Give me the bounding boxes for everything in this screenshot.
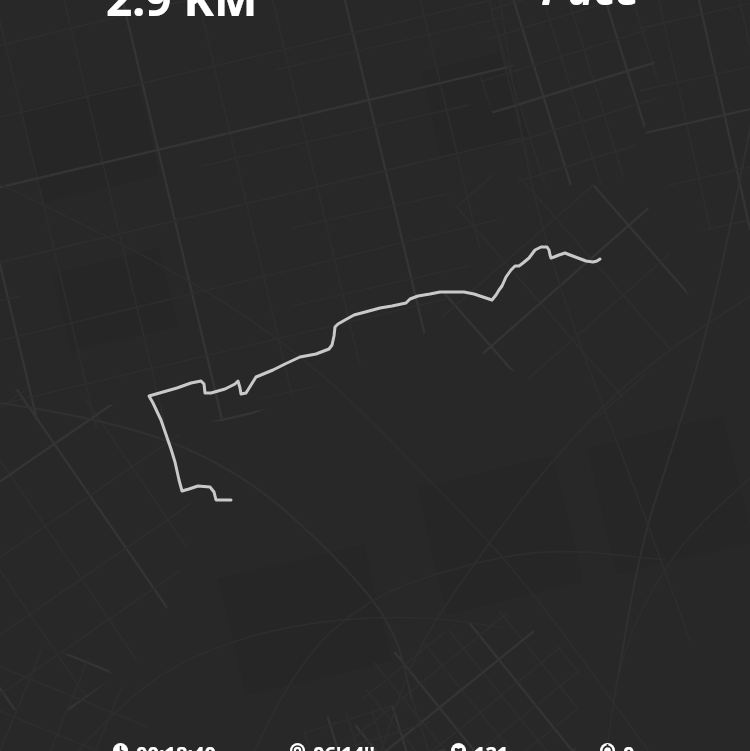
staticText: Pace [541,0,640,18]
staticText: 0 [623,740,635,751]
staticText: 121 [474,740,509,751]
staticText: 06'14'' [313,740,375,751]
other: Run route map [0,0,750,751]
button[interactable]: Elevation gain 0 [600,742,635,751]
staticText: 2.9 KM [106,0,258,30]
staticText: 00:18:40 [136,740,216,751]
button[interactable]: Duration 00:18:40 [113,742,216,751]
button[interactable]: Heart rate 121 [451,742,509,751]
button[interactable]: Average pace 06'14'' [290,742,375,751]
